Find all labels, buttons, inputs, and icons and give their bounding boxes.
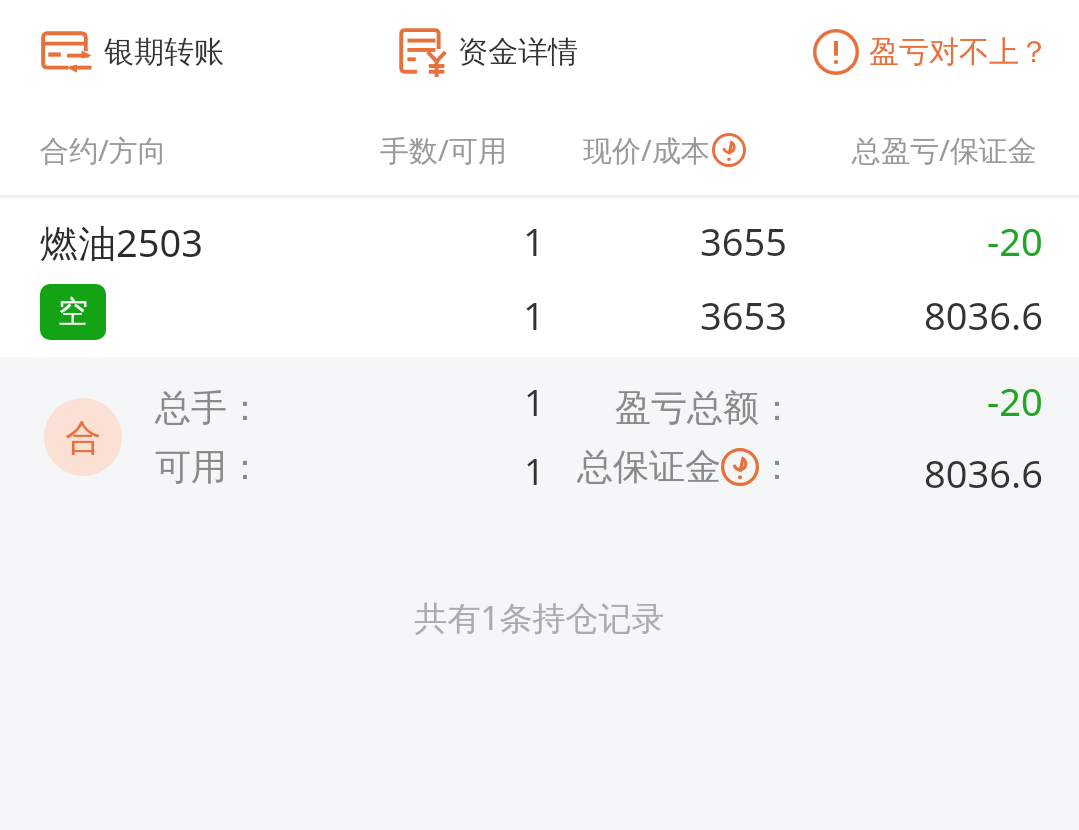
other: 资金详情 <box>396 26 448 78</box>
staticText: ： <box>759 444 795 489</box>
staticText: 1 <box>523 289 545 341</box>
staticText: 共有1条持仓记录 <box>0 595 1079 640</box>
other: 说明 <box>721 448 759 486</box>
staticText: 8036.6 <box>924 289 1043 341</box>
staticText: -20 <box>987 375 1043 427</box>
staticText: 3653 <box>700 289 787 341</box>
button[interactable]: 盈亏说明 <box>809 23 1053 81</box>
staticText: 3655 <box>700 215 787 267</box>
staticText: 8036.6 <box>924 447 1043 499</box>
button[interactable]: 银期转账 <box>36 20 228 84</box>
staticText: 现价/成本 <box>583 130 710 170</box>
staticText: 合约/方向 <box>40 130 167 170</box>
staticText: 1 <box>523 215 545 267</box>
staticText: 空 <box>58 293 88 331</box>
button[interactable]: 总保证金 <box>577 444 795 489</box>
staticText: 1 <box>524 447 545 496</box>
staticText: 盈亏总额： <box>615 385 795 430</box>
other: 合计 <box>44 398 122 476</box>
button[interactable]: 现价/成本 <box>583 130 746 170</box>
staticText: 总盈亏/保证金 <box>852 130 1037 170</box>
staticText: 燃油2503 <box>40 216 203 268</box>
other: 说明 <box>712 133 746 167</box>
other: 盈亏说明 <box>813 29 859 75</box>
staticText: 盈亏对不上？ <box>869 33 1049 71</box>
staticText: 银期转账 <box>104 33 224 71</box>
button[interactable]: 资金详情 <box>392 20 582 84</box>
staticText: 合 <box>65 415 101 460</box>
other: 银期转账 <box>40 26 92 78</box>
staticText: 总手： <box>155 385 263 430</box>
staticText: 资金详情 <box>458 33 578 71</box>
staticText: 可用： <box>155 444 263 489</box>
staticText: 1 <box>524 378 545 427</box>
staticText: 总保证金 <box>577 444 721 489</box>
staticText: 手数/可用 <box>380 130 507 170</box>
button[interactable]: 燃油2503 <box>0 198 1079 357</box>
staticText: -20 <box>987 215 1043 267</box>
